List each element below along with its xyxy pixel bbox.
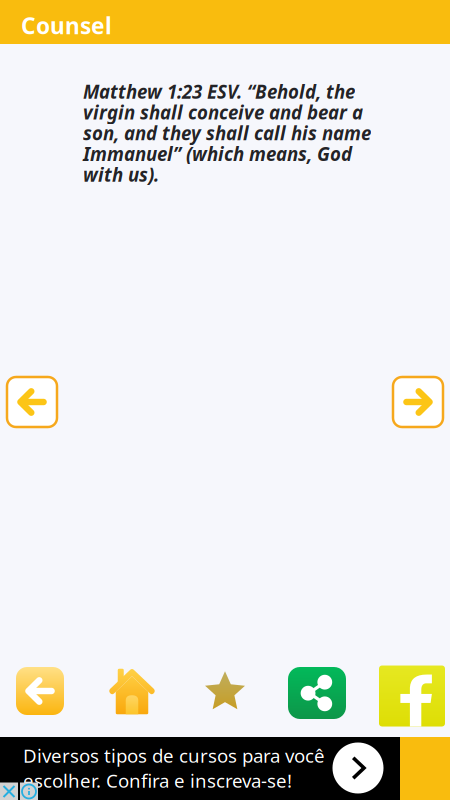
button[interactable]: Back: [16, 667, 64, 715]
staticText: Diversos tipos de cursos para você: [23, 743, 325, 768]
button[interactable]: Home: [104, 663, 160, 719]
button[interactable]: Previous: [7, 377, 57, 427]
button[interactable]: Facebook: [379, 665, 445, 726]
button[interactable]: Share: [288, 667, 346, 719]
staticText: Counsel: [21, 10, 112, 40]
staticText: escolher. Confira e inscreva-se!: [23, 768, 292, 793]
button[interactable]: Next: [393, 377, 443, 427]
staticText: Matthew 1:23 ESV. “Behold, the virgin sh…: [83, 79, 371, 187]
button[interactable]: Favorite: [198, 664, 252, 718]
